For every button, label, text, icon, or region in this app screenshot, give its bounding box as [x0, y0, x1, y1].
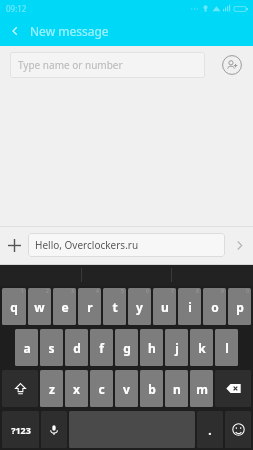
staticText: b — [148, 381, 156, 397]
staticText: k — [198, 340, 206, 356]
staticText: w — [34, 299, 45, 315]
button[interactable]: s — [40, 329, 63, 366]
staticText: v — [123, 381, 130, 397]
button[interactable]: x — [65, 370, 88, 407]
staticText: r — [87, 299, 93, 315]
button[interactable]: Shift — [2, 370, 38, 407]
button[interactable]: m — [190, 370, 213, 407]
staticText: 4 — [96, 288, 99, 295]
staticText: 6 — [146, 288, 149, 295]
button[interactable]: i — [178, 288, 201, 325]
button[interactable]: p — [228, 288, 251, 325]
button[interactable]: r — [78, 288, 101, 325]
button[interactable]: g — [115, 329, 138, 366]
staticText: h — [148, 340, 156, 356]
staticText: y — [136, 299, 143, 315]
staticText: j — [175, 340, 179, 356]
staticText: Hello, Overclockers.ru — [35, 238, 139, 252]
staticText: 09:12 — [6, 3, 27, 14]
button[interactable]: Add contact — [219, 52, 245, 78]
button[interactable]: y — [128, 288, 151, 325]
staticText: c — [98, 381, 105, 397]
staticText: t — [112, 299, 118, 315]
staticText: l — [225, 340, 229, 356]
button[interactable]: w — [28, 288, 51, 325]
staticText: s — [48, 340, 55, 356]
staticText: 1 — [21, 288, 24, 295]
staticText: x — [73, 381, 80, 397]
button[interactable]: . — [197, 411, 223, 448]
staticText: z — [49, 381, 55, 397]
button[interactable]: j — [165, 329, 188, 366]
staticText: g — [123, 340, 131, 356]
button[interactable]: c — [90, 370, 113, 407]
staticText: New message — [30, 23, 109, 39]
button[interactable]: Voice input — [41, 411, 67, 448]
staticText: 0 — [246, 288, 249, 295]
button[interactable]: a — [15, 329, 38, 366]
staticText: 7 — [171, 288, 174, 295]
staticText: o — [211, 299, 219, 315]
staticText: Type name or number — [18, 58, 123, 72]
button[interactable]: u — [153, 288, 176, 325]
button[interactable]: t — [103, 288, 126, 325]
button[interactable]: Back — [0, 16, 30, 46]
staticText: a — [23, 340, 31, 356]
staticText: . — [208, 422, 212, 438]
staticText: 8 — [196, 288, 199, 295]
staticText: f — [99, 340, 104, 356]
staticText: e — [61, 299, 69, 315]
button[interactable]: b — [140, 370, 163, 407]
button[interactable]: l — [215, 329, 238, 366]
staticText: 3 — [71, 288, 74, 295]
staticText: 5 — [121, 288, 124, 295]
button[interactable]: n — [165, 370, 188, 407]
staticText: d — [73, 340, 81, 356]
button[interactable]: Send — [225, 231, 253, 259]
button[interactable]: k — [190, 329, 213, 366]
staticText: p — [236, 299, 244, 315]
button[interactable]: Emoji — [225, 411, 251, 448]
staticText: i — [188, 299, 192, 315]
button[interactable]: d — [65, 329, 88, 366]
staticText: 9 — [221, 288, 224, 295]
button[interactable]: e — [53, 288, 76, 325]
button[interactable]: f — [90, 329, 113, 366]
button[interactable]: Hello, Overclockers.ru — [28, 233, 225, 257]
button[interactable]: Type name or number — [10, 52, 205, 78]
staticText: n — [173, 381, 181, 397]
button[interactable]: q — [2, 288, 26, 325]
staticText: q — [10, 299, 18, 315]
button[interactable]: h — [140, 329, 163, 366]
button[interactable]: ?123 — [2, 411, 39, 448]
staticText: ?123 — [11, 424, 31, 436]
button[interactable]: v — [115, 370, 138, 407]
button[interactable]: z — [40, 370, 63, 407]
staticText: 2 — [46, 288, 49, 295]
staticText: m — [196, 381, 208, 397]
button[interactable]: Add attachment — [0, 231, 28, 259]
button[interactable]: Backspace — [215, 370, 251, 407]
staticText: u — [161, 299, 169, 315]
button[interactable]: o — [203, 288, 226, 325]
